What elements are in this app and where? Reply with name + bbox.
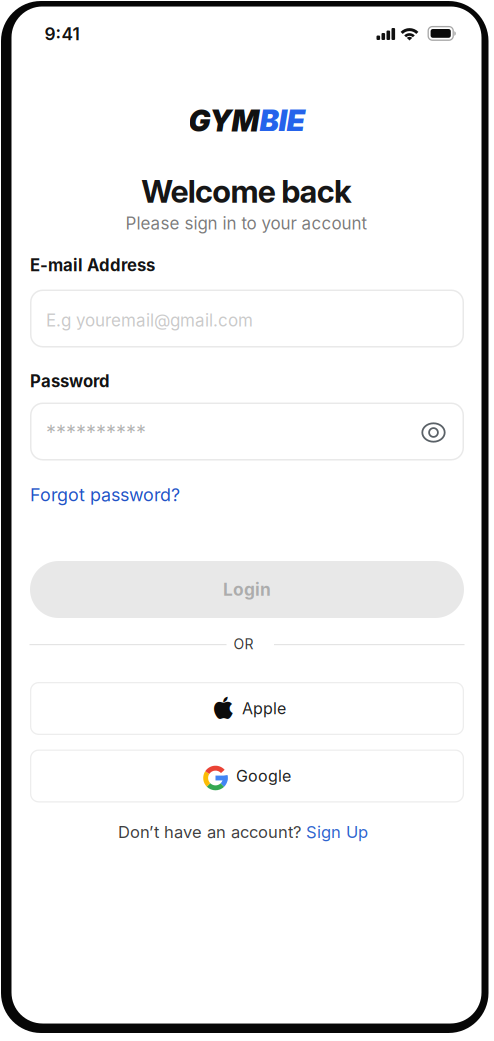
staticText: ********** <box>46 420 146 445</box>
staticText: Don’t have an account? <box>118 822 306 842</box>
staticText: E.g youremail@gmail.com <box>46 310 253 331</box>
staticText: 9:41 <box>44 23 79 44</box>
staticText: OR <box>233 636 253 653</box>
staticText:  <box>214 696 233 720</box>
staticText: Password <box>30 371 110 391</box>
button[interactable]: E-mail Address <box>30 289 464 347</box>
button[interactable]: Google <box>30 749 464 802</box>
staticText: Please sign in to your account <box>125 213 367 234</box>
staticText: Forgot password? <box>30 484 180 506</box>
staticText: Google <box>236 766 291 786</box>
staticText: Sign Up <box>306 822 368 842</box>
button[interactable]: Sign Up <box>306 822 368 842</box>
button[interactable]: Show password <box>413 412 453 452</box>
staticText: Welcome back <box>141 172 352 210</box>
staticText: Apple <box>242 699 286 718</box>
staticText: GYM <box>188 103 259 138</box>
button[interactable]: Password <box>30 402 464 460</box>
staticText: BIE <box>259 103 304 138</box>
staticText: E-mail Address <box>30 255 155 275</box>
staticText: Login <box>223 579 271 600</box>
button[interactable]: Forgot password? <box>30 484 180 506</box>
button[interactable]: Login <box>30 561 464 618</box>
button[interactable]:  <box>30 682 464 735</box>
